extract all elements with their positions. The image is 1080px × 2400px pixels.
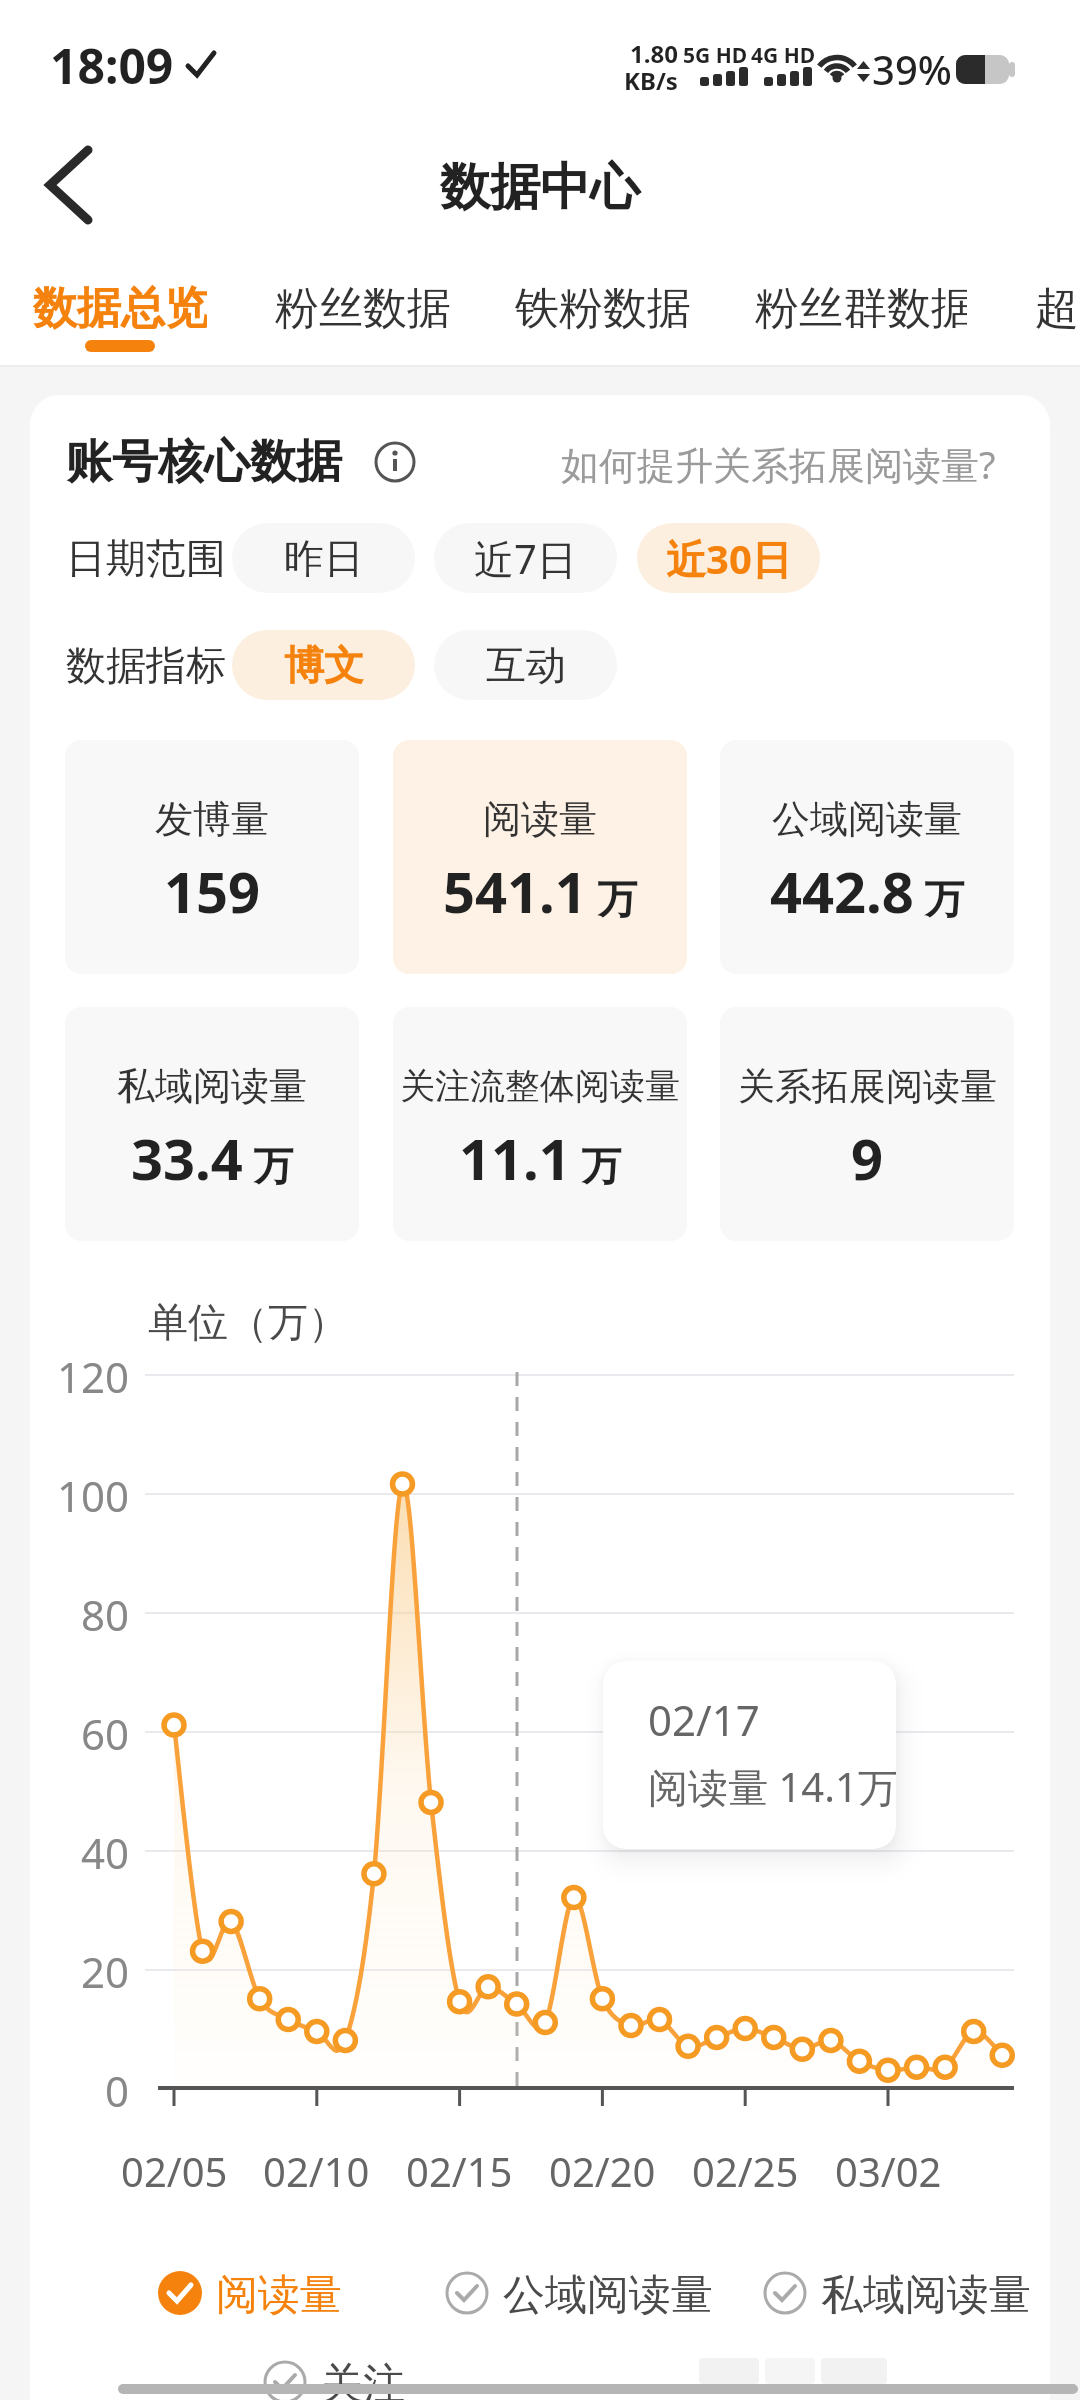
staticText: 60: [81, 1705, 130, 1759]
staticText: 粉丝数据: [275, 281, 451, 336]
staticText: 03/02: [835, 2144, 942, 2198]
button[interactable]: 公域阅读量: [720, 740, 1014, 974]
staticText: 关注流整体阅读量: [400, 1064, 680, 1108]
button[interactable]: 发博量: [65, 740, 359, 974]
button[interactable]: 私域阅读量: [761, 2269, 1061, 2317]
staticText: 442.8 万: [770, 853, 965, 929]
button[interactable]: 阅读量: [156, 2269, 406, 2317]
button[interactable]: 如何提升关系拓展阅读量?: [560, 438, 996, 490]
staticText: 公域阅读量: [503, 2269, 713, 2317]
staticText: 4G HD: [751, 41, 815, 65]
staticText: 阅读量: [216, 2269, 342, 2317]
staticText: 私域阅读量: [117, 1062, 307, 1110]
staticText: 近30日: [666, 531, 792, 586]
staticText: 02/17: [648, 1691, 760, 1745]
button[interactable]: 关系拓展阅读量: [720, 1007, 1014, 1241]
staticText: 02/20: [549, 2144, 656, 2198]
button[interactable]: 近30日: [637, 523, 820, 593]
staticText: 账号核心数据: [66, 433, 342, 491]
staticText: 39%: [872, 42, 952, 94]
staticText: 铁粉数据: [515, 281, 691, 336]
staticText: 超: [1035, 281, 1079, 336]
staticText: 20: [81, 1943, 130, 1997]
staticText: 单位（万）: [148, 1297, 348, 1347]
staticText: 1.80: [630, 37, 678, 65]
button[interactable]: 粉丝群数据: [755, 275, 967, 341]
staticText: 互动: [486, 640, 566, 690]
button[interactable]: 互动: [434, 630, 617, 700]
staticText: 粉丝群数据: [755, 281, 967, 336]
button[interactable]: 私域阅读量: [65, 1007, 359, 1241]
staticText: 昨日: [284, 533, 364, 583]
button[interactable]: 昨日: [232, 523, 415, 593]
button[interactable]: 粉丝数据: [275, 275, 451, 341]
button[interactable]: 公域阅读量: [443, 2269, 743, 2317]
button[interactable]: 近7日: [434, 523, 617, 593]
staticText: 0: [105, 2062, 130, 2116]
button[interactable]: 博文: [232, 630, 415, 700]
button[interactable]: 铁粉数据: [515, 275, 691, 341]
staticText: 关注: [321, 2358, 405, 2400]
staticText: 120: [57, 1348, 130, 1402]
staticText: 日期范围: [66, 533, 226, 583]
button[interactable]: 关注流整体阅读量: [393, 1007, 687, 1241]
staticText: 发博量: [155, 795, 269, 843]
staticText: 02/15: [406, 2144, 513, 2198]
staticText: 关系拓展阅读量: [738, 1063, 997, 1110]
staticText: 02/10: [263, 2144, 370, 2198]
staticText: 11.1 万: [459, 1120, 622, 1196]
staticText: 数据指标: [66, 640, 226, 690]
staticText: 近7日: [474, 531, 577, 586]
staticText: 公域阅读量: [772, 795, 962, 843]
staticText: 541.1 万: [443, 853, 638, 929]
staticText: 02/05: [121, 2144, 228, 2198]
staticText: 80: [81, 1586, 130, 1640]
staticText: 02/25: [692, 2144, 799, 2198]
staticText: 私域阅读量: [821, 2269, 1031, 2317]
button[interactable]: 数据总览: [33, 275, 207, 341]
staticText: KB/s: [624, 64, 678, 92]
button[interactable]: [30, 145, 110, 225]
staticText: 博文: [284, 640, 364, 690]
staticText: 100: [57, 1467, 130, 1521]
staticText: 数据总览: [33, 281, 207, 336]
staticText: 18:09: [50, 33, 174, 98]
staticText: 数据中心: [440, 156, 640, 219]
staticText: 如何提升关系拓展阅读量?: [561, 438, 996, 490]
staticText: 阅读量: [483, 795, 597, 843]
staticText: 40: [81, 1824, 130, 1878]
staticText: 5G HD: [683, 41, 747, 65]
button[interactable]: 超: [1035, 275, 1080, 341]
staticText: 阅读量 14.1万: [648, 1759, 896, 1813]
button[interactable]: 关注: [261, 2358, 441, 2400]
staticText: 159: [164, 853, 261, 929]
button[interactable]: 阅读量: [393, 740, 687, 974]
staticText: 33.4 万: [131, 1120, 294, 1196]
staticText: 9: [851, 1120, 884, 1196]
